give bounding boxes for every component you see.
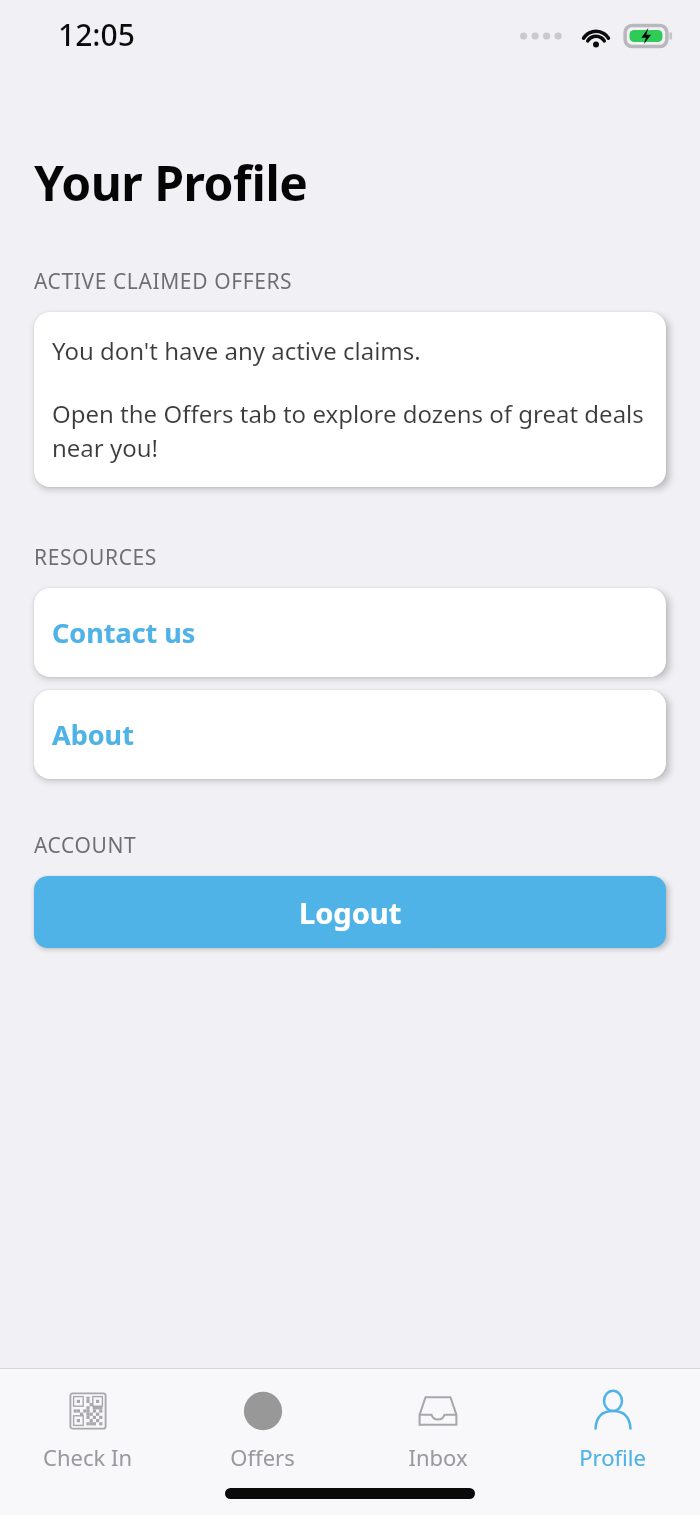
staticText: ACCOUNT [34,831,137,860]
staticText: 12:05 [58,14,135,55]
staticText: Contact us [52,614,196,651]
staticText: Open the Offers tab to explore dozens of… [52,397,648,465]
staticText: Offers [230,1442,295,1472]
staticText: Profile [579,1442,646,1472]
other: Offers [241,1389,285,1433]
staticText: About [52,716,134,753]
button[interactable]: You don't have any active claims. [34,312,666,487]
button[interactable]: About [34,690,666,779]
staticText: You don't have any active claims. [52,334,421,367]
other: Check In [66,1389,110,1433]
button[interactable]: Check In [0,1383,175,1476]
other: Inbox [415,1388,461,1434]
staticText: Logout [299,893,402,932]
button[interactable]: Profile [525,1383,700,1476]
button[interactable]: Logout [34,876,666,948]
button[interactable]: Contact us [34,588,666,677]
other: Profile [590,1388,636,1434]
button[interactable]: Offers [175,1383,350,1476]
staticText: Your Profile [34,150,308,215]
staticText: Inbox [408,1442,468,1472]
staticText: RESOURCES [34,543,157,572]
staticText: ACTIVE CLAIMED OFFERS [34,267,293,296]
button[interactable]: Inbox [350,1383,525,1476]
staticText: Check In [43,1442,132,1472]
